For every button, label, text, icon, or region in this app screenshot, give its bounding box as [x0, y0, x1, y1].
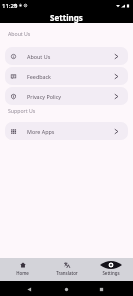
staticText: 11:25 [2, 2, 18, 10]
staticText: Support Us [8, 107, 36, 114]
staticText: Home [16, 270, 29, 276]
staticText: Settings [50, 12, 83, 23]
staticText: About Us [8, 30, 31, 37]
staticText: Feedback [27, 73, 51, 80]
staticText: Privacy Policy [27, 93, 62, 100]
button[interactable]: Settings [89, 258, 133, 276]
button[interactable]: Privacy Policy [5, 87, 128, 105]
button[interactable]: More Apps [5, 122, 128, 140]
staticText: Settings [102, 270, 120, 276]
other: Home [64, 287, 69, 292]
staticText: Translator [56, 270, 78, 276]
button[interactable]: Feedback [5, 67, 128, 85]
staticText: More Apps [27, 128, 55, 135]
button[interactable]: About Us [5, 47, 128, 65]
button[interactable]: Home [0, 258, 45, 276]
other: Back [27, 287, 32, 292]
staticText: About Us [27, 53, 51, 60]
button[interactable]: Translator [45, 258, 89, 276]
other: Recent apps [99, 287, 104, 292]
